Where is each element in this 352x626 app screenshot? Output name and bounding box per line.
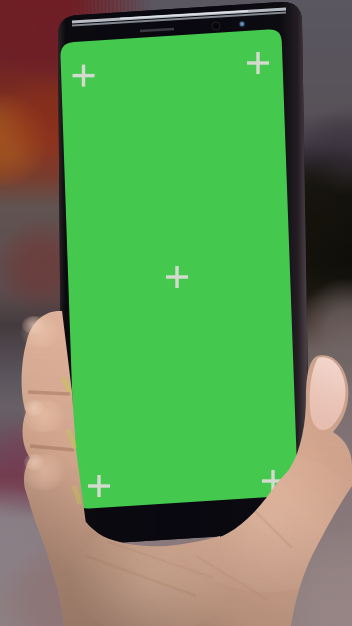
button[interactable]: Hand holding a smartphone with a green c… xyxy=(0,0,352,626)
